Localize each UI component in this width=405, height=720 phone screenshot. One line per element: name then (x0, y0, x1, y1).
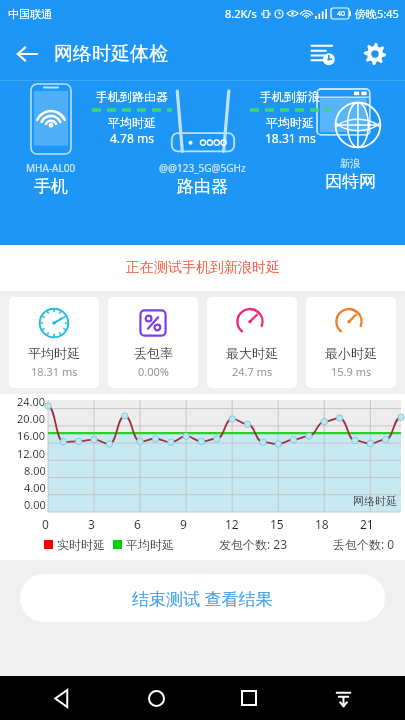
button[interactable]: 结束测试 查看结果 (20, 574, 385, 622)
staticText: 18 (315, 516, 329, 532)
staticText: MHA-AL00 (26, 161, 76, 175)
staticText: 24.00 (17, 394, 46, 409)
button[interactable]: 隐藏导航栏 (323, 678, 363, 718)
staticText: @@123_5G@5GHz (159, 161, 246, 175)
staticText: 40 (337, 9, 346, 19)
staticText: 正在测试手机到新浪时延 (126, 259, 280, 277)
staticText: 15 (270, 516, 284, 532)
button[interactable]: 丢包率 (108, 297, 198, 388)
staticText: 实时时延 (57, 537, 105, 552)
staticText: 手机 (34, 176, 68, 197)
staticText: 结束测试 查看结果 (132, 587, 273, 610)
staticText: 网络时延 (353, 494, 397, 508)
staticText: 平均时延 (126, 537, 174, 552)
staticText: 6 (134, 516, 141, 532)
button[interactable]: 返回 (42, 678, 82, 718)
staticText: 平均时延 (266, 115, 314, 130)
staticText: 0.00% (138, 364, 169, 379)
staticText: 发包个数: 23 (219, 536, 288, 552)
staticText: 20.00 (17, 411, 46, 426)
staticText: 4.00 (24, 480, 46, 495)
staticText: 12 (225, 516, 239, 532)
button[interactable]: 主页 (136, 678, 176, 718)
staticText: 丢包率 (134, 345, 173, 361)
staticText: 傍晚5:45 (355, 6, 399, 21)
staticText: 平均时延 (28, 345, 80, 361)
staticText: 18.31 ms (265, 130, 316, 146)
button[interactable]: 最大时延 (207, 297, 297, 388)
staticText: 3 (88, 516, 95, 532)
staticText: 路由器 (177, 176, 228, 197)
button[interactable]: 设置 (349, 28, 401, 80)
staticText: 手机到路由器 (96, 89, 168, 104)
staticText: 平均时延 (108, 115, 156, 130)
staticText: 21 (360, 516, 374, 532)
button[interactable]: 最近任务 (229, 678, 269, 718)
staticText: 丢包个数: 0 (333, 536, 395, 552)
staticText: 手机到新浪 (260, 89, 320, 104)
staticText: 网络时延体检 (54, 42, 168, 66)
staticText: 24.7 ms (232, 364, 273, 379)
staticText: 0 (42, 516, 49, 532)
button[interactable]: 返回 (0, 27, 54, 81)
staticText: 8.2K/s (225, 6, 257, 21)
staticText: 因特网 (325, 171, 376, 192)
staticText: 18.31 ms (31, 364, 78, 379)
staticText: 8.00 (24, 463, 46, 478)
staticText: 9 (180, 516, 187, 532)
staticText: 15.9 ms (331, 364, 372, 379)
staticText: 4.78 ms (110, 130, 154, 146)
staticText: 最小时延 (325, 345, 377, 361)
button[interactable]: 最小时延 (306, 297, 396, 388)
button[interactable]: 历史记录 (297, 28, 349, 80)
staticText: 16.00 (17, 428, 46, 443)
staticText: 0.00 (24, 497, 46, 512)
staticText: 12.00 (17, 446, 46, 461)
staticText: 最大时延 (226, 345, 278, 361)
staticText: 新浪 (340, 157, 360, 170)
staticText: 中国联通 (8, 7, 52, 21)
button[interactable]: 平均时延 (9, 297, 99, 388)
